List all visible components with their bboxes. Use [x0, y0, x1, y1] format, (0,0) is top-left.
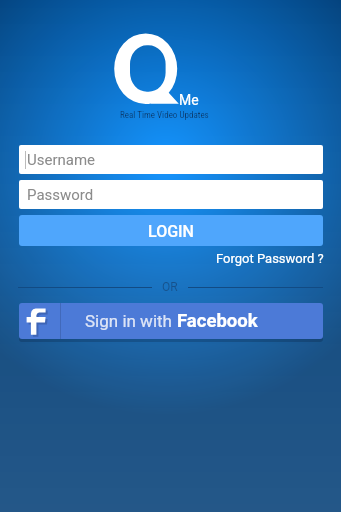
- staticText: LOGIN: [148, 222, 194, 241]
- staticText: Password: [27, 186, 94, 204]
- button[interactable]: Password: [19, 180, 323, 209]
- button[interactable]: Forgot Password ?: [216, 251, 324, 266]
- staticText: Me: [179, 92, 199, 108]
- button[interactable]: LOGIN: [19, 215, 323, 246]
- button[interactable]: Username: [19, 145, 323, 174]
- button[interactable]: Sign in with: [19, 303, 323, 339]
- staticText: Real Time Video Updates: [120, 110, 209, 121]
- staticText: OR: [162, 280, 178, 294]
- staticText: Username: [27, 151, 96, 169]
- staticText: Facebook: [177, 310, 258, 332]
- staticText: Sign in with: [85, 311, 177, 331]
